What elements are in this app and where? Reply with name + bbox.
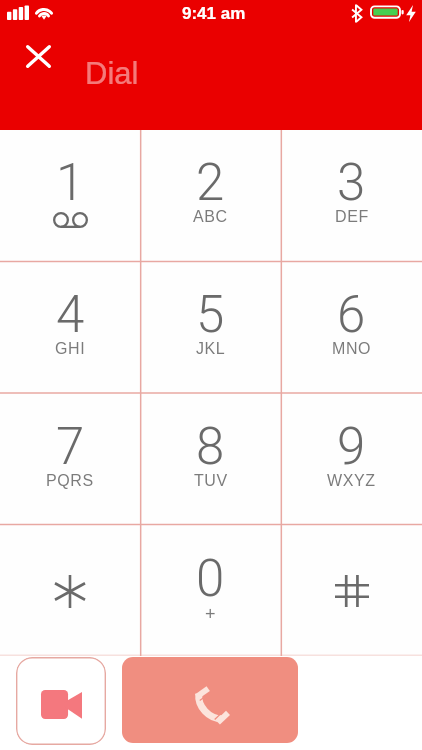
button[interactable]: 3 <box>281 130 422 262</box>
button[interactable]: Close <box>20 38 57 75</box>
button[interactable]: 8 <box>140 394 281 526</box>
button[interactable] <box>0 526 140 656</box>
staticText: WXYZ <box>327 472 376 490</box>
button[interactable]: 0 <box>140 526 281 656</box>
button[interactable]: Call <box>122 657 298 743</box>
button[interactable]: 5 <box>140 262 281 394</box>
button[interactable]: 9 <box>281 394 422 526</box>
staticText: 5 <box>196 285 225 345</box>
staticText: TUV <box>194 472 228 490</box>
staticText: 7 <box>56 417 85 477</box>
button[interactable] <box>281 526 422 656</box>
staticText: 9:41 am <box>182 4 246 23</box>
staticText: 2 <box>196 153 225 213</box>
staticText: 9 <box>337 417 366 477</box>
button[interactable]: 4 <box>0 262 140 394</box>
button[interactable]: Video call <box>16 657 106 745</box>
staticText: 4 <box>56 285 85 345</box>
staticText: JKL <box>196 340 226 358</box>
button[interactable]: 1 <box>0 130 140 262</box>
button[interactable]: 6 <box>281 262 422 394</box>
staticText: + <box>205 604 217 624</box>
staticText: Dial <box>85 56 139 91</box>
staticText: 0 <box>196 549 225 609</box>
staticText: MNO <box>332 340 372 358</box>
staticText: 8 <box>196 417 225 477</box>
staticText: DEF <box>335 208 369 226</box>
button[interactable]: 2 <box>140 130 281 262</box>
staticText: 3 <box>337 153 366 213</box>
staticText: PQRS <box>46 472 94 490</box>
button[interactable]: 7 <box>0 394 140 526</box>
staticText: ABC <box>193 208 228 226</box>
staticText: 6 <box>337 285 366 345</box>
staticText: GHI <box>55 340 86 358</box>
staticText: 1 <box>56 153 85 213</box>
